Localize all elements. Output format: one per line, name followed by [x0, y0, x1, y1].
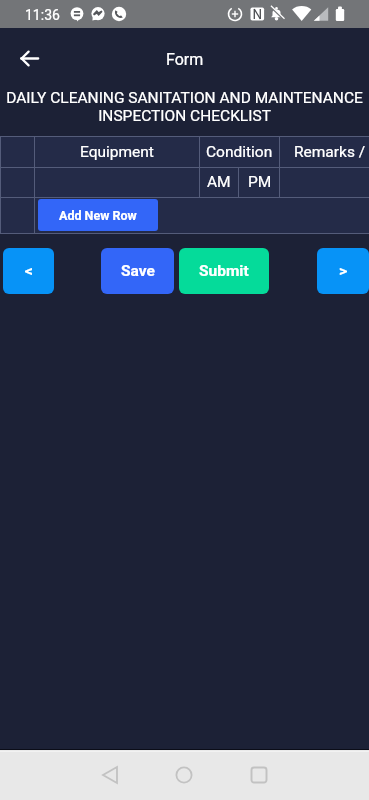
button[interactable]: Recent apps: [234, 749, 284, 800]
staticText: AM: [207, 173, 231, 191]
staticText: DAILY CLEANING SANITATION AND MAINTENANC…: [6, 89, 363, 125]
staticText: Add New Row: [59, 208, 137, 223]
button[interactable]: Add New Row: [38, 199, 158, 231]
staticText: Remarks / Recommendation: [294, 143, 369, 161]
button[interactable]: Previous: [3, 248, 54, 294]
staticText: Equipment: [80, 143, 154, 161]
staticText: <: [25, 262, 33, 280]
staticText: Form: [166, 50, 204, 69]
button[interactable]: Save: [101, 248, 174, 294]
staticText: PM: [248, 173, 272, 191]
button[interactable]: Submit: [179, 248, 269, 294]
staticText: >: [339, 262, 347, 280]
button[interactable]: Next: [317, 248, 369, 294]
button[interactable]: Home: [159, 749, 209, 800]
staticText: Condition: [206, 143, 273, 161]
staticText: Save: [121, 262, 155, 280]
button[interactable]: Back: [10, 38, 50, 78]
staticText: Submit: [199, 262, 249, 280]
button[interactable]: Back: [85, 749, 135, 800]
staticText: 11:36: [25, 7, 60, 23]
